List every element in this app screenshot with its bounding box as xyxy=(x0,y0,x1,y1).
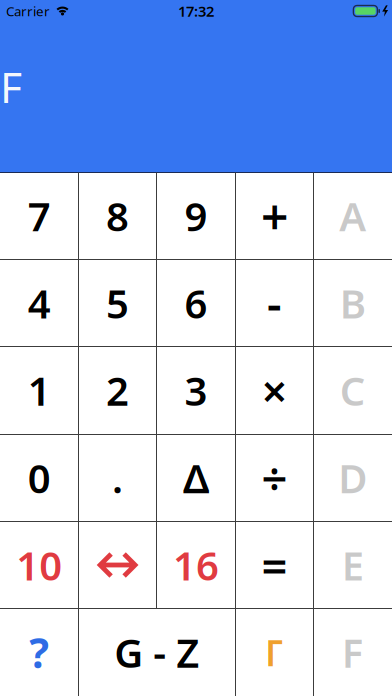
button[interactable]: 0 xyxy=(0,434,78,521)
button[interactable]: 3 xyxy=(157,347,235,434)
staticText: . xyxy=(112,451,123,504)
button[interactable]: × xyxy=(235,347,314,434)
staticText: 8 xyxy=(106,189,129,242)
button[interactable]: 5 xyxy=(78,259,157,347)
staticText: G - Z xyxy=(114,626,199,679)
staticText: 1 xyxy=(28,364,51,417)
staticText: 3 xyxy=(184,364,207,417)
button[interactable]: 6 xyxy=(157,259,235,347)
staticText: 2 xyxy=(106,364,129,417)
button[interactable]: C xyxy=(314,347,392,434)
button[interactable]: B xyxy=(314,259,392,347)
staticText: Γ xyxy=(265,628,284,676)
button[interactable]: - xyxy=(235,259,314,347)
staticText: E xyxy=(342,538,364,591)
button[interactable]: 16 xyxy=(157,521,235,609)
staticText: F xyxy=(0,58,22,115)
staticText: = xyxy=(261,535,287,595)
staticText: Δ xyxy=(183,451,209,504)
staticText: 7 xyxy=(28,189,51,242)
button[interactable]: ? xyxy=(0,609,78,696)
staticText: B xyxy=(340,276,366,329)
staticText: A xyxy=(339,189,366,242)
staticText: 17:32 xyxy=(178,1,214,21)
staticText: D xyxy=(338,451,367,504)
button[interactable]: 7 xyxy=(0,172,78,259)
button[interactable]: + xyxy=(235,172,314,259)
button[interactable]: G - Z xyxy=(78,609,235,696)
staticText: C xyxy=(340,364,366,417)
button[interactable]: Δ xyxy=(157,434,235,521)
button[interactable]: E xyxy=(314,521,392,609)
staticText: 0 xyxy=(28,451,51,504)
button[interactable]: 1 xyxy=(0,347,78,434)
staticText: 4 xyxy=(28,276,51,329)
staticText: - xyxy=(267,273,282,333)
button[interactable]: D xyxy=(314,434,392,521)
staticText: ? xyxy=(29,625,49,680)
button[interactable]: 4 xyxy=(0,259,78,347)
button[interactable]: F xyxy=(314,609,392,696)
staticText: 10 xyxy=(16,538,62,591)
button[interactable]: 8 xyxy=(78,172,157,259)
staticText: F xyxy=(342,626,364,679)
staticText: 5 xyxy=(106,276,129,329)
staticText: + xyxy=(261,184,288,247)
button[interactable]: . xyxy=(78,434,157,521)
button[interactable]: ÷ xyxy=(235,434,314,521)
staticText: Carrier xyxy=(6,2,50,20)
staticText: 9 xyxy=(184,189,207,242)
staticText: × xyxy=(261,360,287,420)
staticText: 6 xyxy=(184,276,207,329)
button[interactable]: A xyxy=(314,172,392,259)
button[interactable]: Γ xyxy=(235,609,314,696)
button[interactable]: 10 xyxy=(0,521,78,609)
staticText: ÷ xyxy=(261,448,287,508)
button[interactable]: Swap conversion direction xyxy=(78,521,157,609)
button[interactable]: 9 xyxy=(157,172,235,259)
button[interactable]: 2 xyxy=(78,347,157,434)
staticText: 16 xyxy=(173,538,219,591)
button[interactable]: = xyxy=(235,521,314,609)
